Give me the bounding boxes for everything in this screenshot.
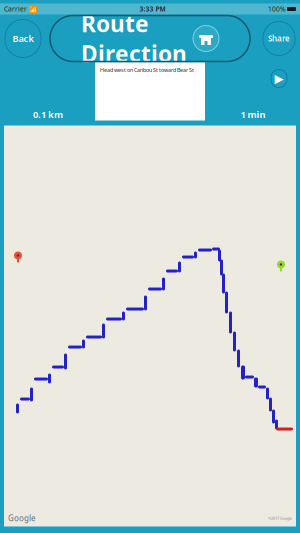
staticText: ▶ <box>274 72 283 85</box>
staticText: 1 min <box>240 108 265 120</box>
staticText: Carrier 📶 <box>4 5 37 13</box>
button[interactable]: Share <box>263 21 295 55</box>
staticText: Route Direction <box>81 8 187 69</box>
button[interactable]: Home <box>193 25 219 51</box>
staticText: 3:33 PM <box>139 5 165 13</box>
staticText: 0.1 km <box>33 108 63 120</box>
button[interactable]: Back <box>5 19 41 57</box>
staticText: Back <box>12 32 33 45</box>
staticText: Google <box>8 513 36 523</box>
staticText: Share <box>268 33 290 44</box>
button[interactable]: Next step <box>271 69 287 87</box>
staticText: 100% <box>268 5 286 13</box>
staticText: Head west on Caribou St toward Bear St <box>100 66 194 74</box>
staticText: ©2017 Google <box>268 515 292 521</box>
